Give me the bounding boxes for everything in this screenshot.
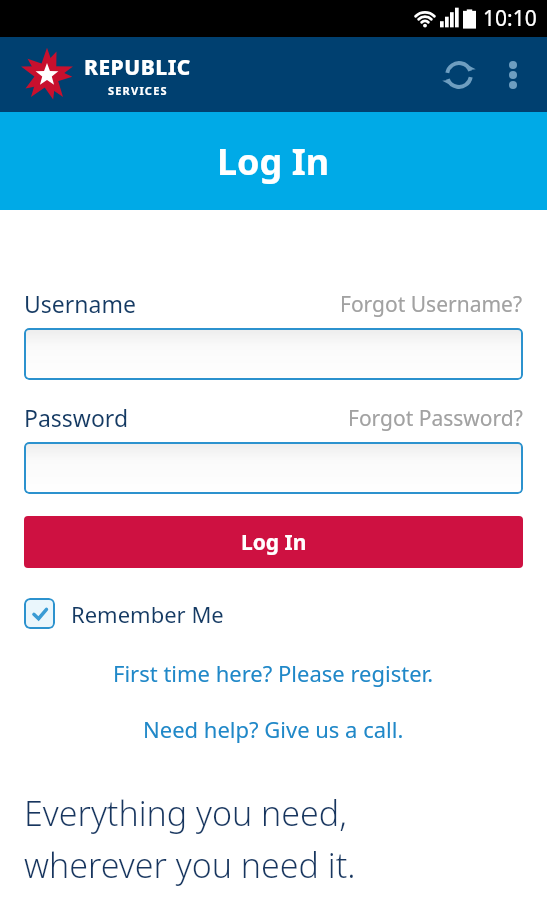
staticText: Password	[24, 402, 129, 433]
staticText: Forgot Username?	[340, 290, 523, 319]
button[interactable]	[24, 442, 523, 494]
staticText: 10:10	[483, 4, 537, 33]
staticText: REPUBLIC	[84, 53, 191, 82]
staticText: Log In	[241, 528, 307, 557]
staticText: Need help? Give us a call.	[143, 714, 404, 744]
button[interactable]: Remember Me	[24, 598, 232, 629]
staticText: Remember Me	[71, 599, 224, 629]
staticText: Username	[24, 288, 136, 319]
staticText: Log In	[217, 137, 330, 186]
button[interactable]: First time here? Please register.	[24, 654, 523, 692]
staticText: Forgot Password?	[348, 404, 523, 433]
button[interactable]: More options	[487, 49, 539, 101]
staticText: First time here? Please register.	[113, 658, 434, 688]
staticText: wherever you need it.	[24, 842, 356, 888]
button[interactable]: Log In	[24, 516, 523, 568]
button[interactable]	[24, 328, 523, 380]
staticText: Everything you need,	[24, 790, 347, 836]
staticText: SERVICES	[108, 83, 168, 98]
button[interactable]: Forgot Password?	[348, 404, 523, 433]
button[interactable]: Refresh	[431, 47, 487, 103]
button[interactable]: Forgot Username?	[340, 290, 523, 319]
button[interactable]: Need help? Give us a call.	[24, 710, 523, 748]
